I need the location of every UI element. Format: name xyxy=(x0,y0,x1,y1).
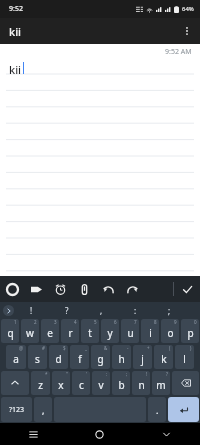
button[interactable]: ; xyxy=(112,371,130,395)
button[interactable]: Shift xyxy=(1,371,29,395)
staticText: @ xyxy=(19,345,24,351)
staticText: , xyxy=(100,305,103,316)
staticText: 1 xyxy=(14,319,17,325)
button[interactable]: ! xyxy=(132,371,150,395)
staticText: z xyxy=(38,378,43,392)
staticText: " xyxy=(66,371,68,377)
staticText: 64% xyxy=(182,5,194,13)
button[interactable]: 8 xyxy=(141,319,159,343)
staticText: k xyxy=(161,352,167,366)
button[interactable]: + xyxy=(133,345,152,369)
button[interactable]: " xyxy=(52,371,70,395)
staticText: x xyxy=(58,378,64,392)
button[interactable]: - xyxy=(112,345,131,369)
button[interactable]: ? xyxy=(49,302,84,318)
button[interactable]: Home xyxy=(66,423,133,445)
staticText: 3 xyxy=(54,319,57,325)
staticText: r xyxy=(68,326,73,340)
button[interactable]: ! xyxy=(14,302,49,318)
button[interactable]: , xyxy=(84,302,118,318)
button[interactable]: 9:52 AM xyxy=(0,44,200,276)
staticText: - xyxy=(127,345,129,351)
staticText: 7 xyxy=(134,319,137,325)
staticText: ' xyxy=(86,371,88,377)
staticText: 8 xyxy=(154,319,157,325)
button[interactable]: ? xyxy=(152,371,170,395)
button[interactable]: * xyxy=(31,371,50,395)
staticText: 9:52 xyxy=(9,4,23,14)
staticText: h xyxy=(118,352,125,366)
staticText: ?123 xyxy=(9,405,25,415)
button[interactable]: 2 xyxy=(21,319,39,343)
staticText: u xyxy=(127,326,134,340)
button[interactable]: 6 xyxy=(101,319,119,343)
staticText: p xyxy=(187,326,194,340)
button[interactable]: ) xyxy=(175,345,194,369)
staticText: 9 xyxy=(174,319,177,325)
button[interactable]: : xyxy=(92,371,110,395)
button[interactable]: : xyxy=(118,302,152,318)
button[interactable]: 0 xyxy=(181,319,199,343)
button[interactable]: Reminder xyxy=(48,276,72,302)
button[interactable]: 9 xyxy=(161,319,179,343)
staticText: ( xyxy=(169,345,171,351)
staticText: a xyxy=(13,352,19,366)
button[interactable]: & xyxy=(91,345,110,369)
button[interactable]: 3 xyxy=(41,319,59,343)
staticText: b xyxy=(118,378,125,392)
button[interactable]: Enter xyxy=(168,397,199,422)
staticText: 6 xyxy=(114,319,117,325)
staticText: ; xyxy=(126,371,128,377)
button[interactable]: ' xyxy=(72,371,90,395)
button[interactable]: . xyxy=(148,397,166,422)
button[interactable]: 7 xyxy=(121,319,139,343)
button[interactable]: , xyxy=(34,397,52,422)
staticText: v xyxy=(98,378,104,392)
staticText: q xyxy=(7,326,14,340)
button[interactable]: ( xyxy=(154,345,173,369)
staticText: n xyxy=(138,378,145,392)
staticText: s xyxy=(35,352,40,366)
button[interactable]: _ xyxy=(70,345,89,369)
staticText: w xyxy=(26,326,34,340)
staticText: 2 xyxy=(34,319,37,325)
button[interactable]: Recents xyxy=(0,423,66,445)
staticText: ? xyxy=(166,371,168,377)
button[interactable]: 5 xyxy=(81,319,99,343)
staticText: m xyxy=(156,378,166,392)
button[interactable]: More options xyxy=(174,18,200,44)
staticText: kii xyxy=(9,62,22,77)
staticText: _ xyxy=(85,345,87,351)
button[interactable]: Color palette xyxy=(0,276,24,302)
button[interactable]: Redo xyxy=(120,276,144,302)
button[interactable]: Label xyxy=(24,276,48,302)
staticText: ! xyxy=(30,305,33,316)
button[interactable]: Attach xyxy=(72,276,96,302)
staticText: ) xyxy=(190,345,192,351)
staticText: c xyxy=(79,378,84,392)
button[interactable]: Expand toolbar xyxy=(3,305,14,316)
staticText: $ xyxy=(63,345,66,351)
staticText: , xyxy=(42,404,45,416)
button[interactable]: Save xyxy=(174,276,200,302)
button[interactable]: 4 xyxy=(61,319,79,343)
button[interactable]: $ xyxy=(49,345,68,369)
button[interactable]: 1 xyxy=(1,319,19,343)
button[interactable]: ; xyxy=(152,302,186,318)
staticText: d xyxy=(55,352,62,366)
button[interactable]: ?123 xyxy=(1,397,32,422)
staticText: ? xyxy=(65,305,69,316)
staticText: e xyxy=(47,326,53,340)
staticText: * xyxy=(45,371,48,377)
button[interactable]: Backspace xyxy=(172,371,199,395)
button[interactable]: # xyxy=(28,345,47,369)
staticText: 4 xyxy=(74,319,77,325)
button[interactable]: Undo xyxy=(96,276,120,302)
staticText: t xyxy=(88,326,92,340)
staticText: i xyxy=(149,326,152,340)
staticText: : xyxy=(134,305,137,316)
button[interactable]: Back xyxy=(133,423,200,445)
staticText: g xyxy=(97,352,104,366)
button[interactable]: @ xyxy=(6,345,26,369)
